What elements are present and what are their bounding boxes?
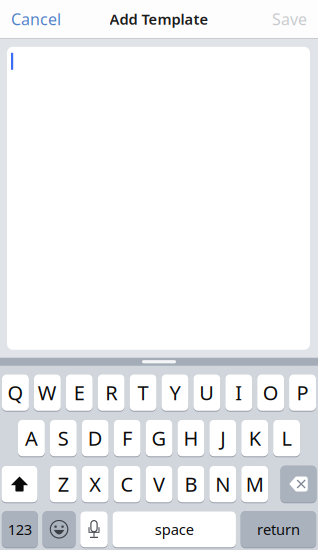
staticText: T <box>137 379 148 406</box>
staticText: O <box>263 379 279 406</box>
staticText: Q <box>7 379 23 406</box>
button[interactable]: Z <box>50 466 77 503</box>
staticText: R <box>105 379 117 406</box>
staticText: L <box>282 425 292 451</box>
button[interactable]: I <box>225 374 252 412</box>
button[interactable]: D <box>82 420 109 457</box>
button[interactable]: U <box>193 374 220 412</box>
button[interactable]: J <box>209 420 236 457</box>
staticText: C <box>121 471 134 497</box>
button[interactable]: return <box>241 511 316 548</box>
staticText: Y <box>169 379 180 406</box>
staticText: B <box>184 471 197 497</box>
button[interactable]: C <box>114 466 140 503</box>
staticText: E <box>74 379 85 406</box>
staticText: U <box>199 379 214 406</box>
button[interactable]: Dictation <box>80 511 108 548</box>
staticText: S <box>58 425 69 451</box>
button[interactable]: Y <box>161 374 188 412</box>
staticText: Cancel <box>11 8 61 30</box>
staticText: P <box>297 379 309 406</box>
staticText: N <box>215 471 230 497</box>
button[interactable]: 123 <box>2 511 38 548</box>
staticText: K <box>249 425 261 451</box>
staticText: G <box>151 425 166 451</box>
button[interactable]: X <box>82 466 109 503</box>
button[interactable]: Cancel <box>0 0 71 40</box>
staticText: F <box>122 425 132 451</box>
staticText: A <box>25 425 38 451</box>
staticText: W <box>38 379 57 406</box>
button[interactable]: R <box>98 374 125 412</box>
staticText: Save <box>272 8 307 30</box>
staticText: Z <box>58 471 69 497</box>
button[interactable]: E <box>66 374 93 412</box>
button[interactable]: Shift <box>1 466 37 503</box>
staticText: X <box>89 471 101 497</box>
staticText: V <box>153 471 165 497</box>
button[interactable]: Delete <box>280 466 316 503</box>
button[interactable]: W <box>34 374 61 412</box>
button[interactable]: O <box>257 374 284 412</box>
button[interactable]: A <box>18 420 45 457</box>
staticText: space <box>155 519 194 539</box>
staticText: H <box>183 425 198 451</box>
button[interactable]: T <box>130 374 156 412</box>
button[interactable]: G <box>145 420 172 457</box>
button[interactable]: Q <box>2 374 29 412</box>
button[interactable]: V <box>145 466 172 503</box>
staticText: J <box>220 425 225 451</box>
staticText: return <box>257 519 300 539</box>
button[interactable]: N <box>209 466 236 503</box>
button[interactable]: B <box>177 466 204 503</box>
button[interactable]: F <box>114 420 140 457</box>
button[interactable]: K <box>241 420 268 457</box>
button[interactable]: L <box>273 420 300 457</box>
staticText: Add Template <box>109 9 208 29</box>
button[interactable]: S <box>50 420 77 457</box>
staticText: D <box>88 425 103 451</box>
staticText: 123 <box>8 519 32 539</box>
button[interactable]: M <box>241 466 268 503</box>
button[interactable]: Emoji <box>42 511 75 548</box>
button[interactable]: Save <box>262 0 318 40</box>
button[interactable]: space <box>112 511 236 548</box>
staticText: M <box>246 471 264 497</box>
staticText: I <box>235 379 242 406</box>
button[interactable]: P <box>289 374 316 412</box>
button[interactable]: H <box>177 420 204 457</box>
